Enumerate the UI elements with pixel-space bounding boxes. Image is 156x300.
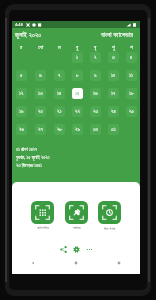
staticText: ১৬ [93,91,98,96]
button[interactable]: More options [85,245,94,254]
staticText: ১ [76,55,79,60]
button[interactable]: ১ [72,52,83,63]
staticText: ১৪ [57,91,62,96]
button[interactable]: ২৩ [90,106,101,117]
staticText: ২৩ জিলহজ্জ ১৪৪১ [16,162,43,168]
button[interactable]: ১৯ [16,106,27,117]
staticText: ১২ [19,91,24,96]
button[interactable]: ১৭ [108,88,119,99]
staticText: ২৪ [111,109,116,114]
staticText: ৩০ [93,127,98,132]
staticText: ২৬ [19,127,25,132]
staticText: ১৮ [129,91,134,96]
staticText: ২ [94,55,97,60]
button[interactable]: ৩১ [108,124,119,135]
staticText: ১৭ [111,91,116,96]
button[interactable]: ৩ [108,52,119,63]
button[interactable]: ৫ [16,70,27,81]
button[interactable]: ৭ [54,70,65,81]
staticText: ১৩ [38,91,43,96]
staticText: ২৫ [129,109,134,114]
staticText: শু [112,45,115,51]
button[interactable]: ক্যালেন্ডার [31,201,54,230]
button[interactable]: ২৮ [54,124,65,135]
staticText: সো [38,45,44,51]
button[interactable]: ২১ [54,106,65,117]
staticText: ১৫ [75,91,80,96]
staticText: 4:46 [15,22,23,27]
staticText: দিন গণনা [104,226,116,231]
button[interactable]: Home [54,257,97,269]
button[interactable]: ৬ [35,70,46,81]
button[interactable]: ২২ [72,106,83,117]
staticText: নামাজ [73,226,81,230]
staticText: ২৭ [38,127,43,132]
staticText: ২২ [75,109,81,114]
button[interactable]: ১৪ [54,88,65,99]
button[interactable]: Settings [72,245,81,254]
staticText: ৭ [58,73,61,78]
staticText: ৯ [94,73,97,78]
staticText: ৩১ [111,127,116,132]
staticText: ২৮ [57,127,63,132]
button[interactable]: ২৭ [35,124,46,135]
staticText: বৃ [94,45,97,51]
staticText: বাংলা ক্যালেন্ডার [101,30,133,39]
button[interactable]: দিন গণনা [98,201,121,231]
staticText: ২৩ [93,109,99,114]
staticText: জুলাই ২০২০ [15,30,42,39]
button[interactable]: ২ [90,52,101,63]
button[interactable]: ২৯ [72,124,83,135]
staticText: ১১ [129,73,134,78]
button[interactable]: Recents [97,257,140,269]
button[interactable]: ৮ [72,70,83,81]
staticText: ০১ শ্রাবণ ১৪২৭ [16,146,38,152]
button[interactable]: ১১ [126,70,137,81]
staticText: ক্যালেন্ডার [37,226,49,230]
staticText: ৬ [39,73,42,78]
staticText: ৮ [76,73,79,78]
button[interactable]: ১২ [16,88,27,99]
button[interactable]: ১৬ [90,88,101,99]
staticText: ২০ [38,109,43,114]
staticText: বুধবার, ১৫ জুলাই ২০২০ [16,154,50,160]
button[interactable]: ১৩ [35,88,46,99]
staticText: ২১ [57,109,62,114]
button[interactable]: ১০ [108,70,119,81]
staticText: ৫ [20,73,23,78]
button[interactable]: ২৫ [126,106,137,117]
button[interactable]: Share [59,245,68,254]
staticText: ১৯ [19,109,24,114]
button[interactable]: ২৪ [108,106,119,117]
button[interactable]: Back [12,257,54,269]
staticText: শ [130,45,133,51]
staticText: ৩ [112,55,115,60]
staticText: বু [76,45,79,51]
button[interactable]: ১৮ [126,88,137,99]
button[interactable]: ২৬ [16,124,27,135]
button[interactable]: ৯ [90,70,101,81]
button[interactable]: নামাজ [65,201,88,230]
staticText: ১০ [111,73,116,78]
staticText: ৪ [130,55,133,60]
button[interactable]: ৩০ [90,124,101,135]
button[interactable]: ১৫ [72,88,83,99]
button[interactable]: ২০ [35,106,46,117]
staticText: র [20,45,23,51]
staticText: ম [58,45,61,51]
staticText: ২৯ [75,127,81,132]
button[interactable]: ৪ [126,52,137,63]
